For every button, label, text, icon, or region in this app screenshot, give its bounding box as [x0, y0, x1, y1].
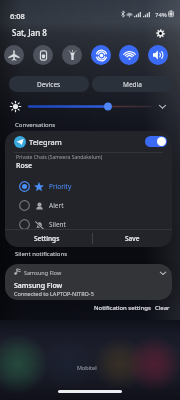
staticText: Clear — [155, 304, 170, 312]
button[interactable]: Expand notification — [157, 267, 169, 279]
button[interactable]: Hotspot — [91, 45, 111, 65]
button[interactable]: Clear — [152, 301, 172, 314]
staticText: Mobitel — [77, 364, 97, 371]
button[interactable]: Alert — [5, 196, 172, 215]
button[interactable]: Save — [93, 230, 172, 247]
button[interactable]: Wi-Fi — [119, 45, 139, 65]
button[interactable]: Samsung Flow — [5, 264, 172, 300]
staticText: Samsung Flow — [24, 269, 62, 276]
button[interactable]: Settings — [5, 230, 88, 247]
staticText: Telegram — [29, 137, 62, 147]
staticText: 6:08 — [10, 11, 25, 21]
button[interactable]: Airplane mode — [4, 45, 24, 65]
staticText: Alert — [49, 201, 64, 210]
staticText: Silent — [49, 220, 66, 229]
button[interactable]: Priority — [5, 177, 172, 196]
button[interactable]: Notification settings — [93, 301, 151, 314]
staticText: Notification settings — [94, 304, 151, 312]
staticText: Media — [123, 80, 142, 89]
staticText: Sat, Jan 8 — [12, 27, 47, 38]
button[interactable]: Telegram notifications — [145, 136, 167, 147]
button[interactable]: Media — [92, 76, 172, 92]
staticText: 74% — [155, 11, 167, 19]
button[interactable]: Settings — [153, 26, 168, 41]
staticText: Private Chats (Sameera Sandakelum) — [16, 154, 103, 161]
staticText: Rose — [16, 161, 33, 171]
staticText: Priority — [49, 182, 72, 191]
button[interactable]: Flashlight — [62, 45, 82, 65]
staticText: Conversations — [15, 121, 56, 129]
button[interactable]: Telegram — [5, 131, 172, 152]
staticText: Devices — [37, 80, 61, 89]
button[interactable]: Silent — [5, 215, 172, 234]
staticText: Samsung Flow — [14, 281, 63, 291]
staticText: Settings — [34, 234, 60, 243]
button[interactable]: Devices — [9, 76, 89, 92]
button[interactable]: Mobile data — [33, 45, 53, 65]
button[interactable]: Expand quick settings — [156, 100, 169, 113]
staticText: Silent notifications — [15, 250, 68, 258]
staticText: Save — [125, 234, 140, 243]
staticText: Connected to LAPTOP-NITRO-5 — [14, 290, 94, 297]
button[interactable]: Sound — [148, 45, 168, 65]
